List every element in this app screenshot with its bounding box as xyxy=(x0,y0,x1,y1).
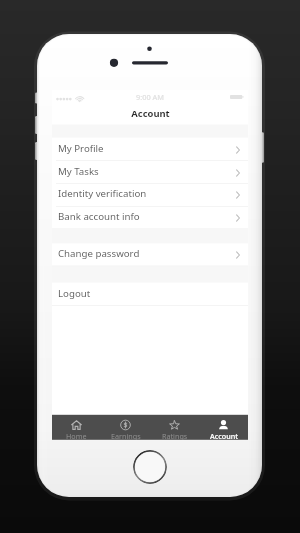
staticText: Account xyxy=(210,431,238,440)
button[interactable]: Account xyxy=(199,415,248,440)
staticText: Change password xyxy=(58,247,140,260)
button[interactable]: Logout xyxy=(52,283,248,306)
staticText: My Tasks xyxy=(58,165,99,178)
staticText: Ratings xyxy=(162,431,188,440)
staticText: Home xyxy=(66,431,87,440)
button[interactable]: My Tasks xyxy=(52,161,248,184)
button[interactable]: Identity verification xyxy=(52,183,248,206)
button[interactable]: Home xyxy=(52,415,101,440)
staticText: 9:00 AM xyxy=(136,92,165,102)
button[interactable]: Earnings xyxy=(101,415,150,440)
staticText: Logout xyxy=(58,287,91,300)
staticText: Account xyxy=(131,107,170,120)
button[interactable]: Ratings xyxy=(150,415,199,440)
staticText: Bank account info xyxy=(58,210,140,223)
staticText: Earnings xyxy=(111,431,141,440)
button[interactable]: Bank account info xyxy=(52,206,248,229)
staticText: Identity verification xyxy=(58,187,147,200)
staticText: My Profile xyxy=(58,142,104,155)
button[interactable]: Change password xyxy=(52,243,248,266)
button[interactable]: Home button xyxy=(133,450,167,484)
button[interactable]: My Profile xyxy=(52,138,248,161)
